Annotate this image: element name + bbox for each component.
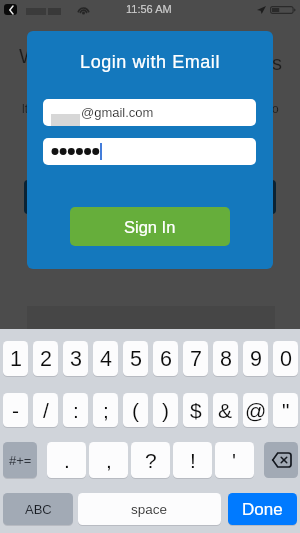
staticText: ? [145,449,157,472]
staticText: ( [132,399,139,422]
staticText: Login with Email [27,52,273,72]
button[interactable]: " [273,393,298,427]
button[interactable]: . [47,442,86,478]
button[interactable]: / [33,393,58,427]
button[interactable]: 5 [123,341,148,376]
staticText: ; [103,399,109,422]
button[interactable]: , [89,442,128,478]
button[interactable]: 1 [3,341,28,376]
staticText: & [218,399,233,422]
staticText: , [106,449,112,472]
staticText: 8 [220,347,232,371]
button[interactable]: @ [243,393,268,427]
staticText: Welcome to our Rewards [19,45,244,67]
staticText: o [272,102,279,115]
staticText: 6 [160,347,172,371]
staticText: 0 [280,347,292,371]
button[interactable]: & [213,393,238,427]
button[interactable]: ; [93,393,118,427]
button[interactable]: 9 [243,341,268,376]
button[interactable]: ) [153,393,178,427]
staticText: 5 [130,347,142,371]
staticText: @ [245,399,267,422]
button[interactable]: @gmail.com [43,99,256,126]
staticText: lt [22,102,28,115]
staticText: 2 [40,347,52,371]
button[interactable]: - [3,393,28,427]
button[interactable]: ( [123,393,148,427]
button[interactable]: Back [4,4,17,15]
button[interactable]: $ [183,393,208,427]
button[interactable]: Sign In [70,207,230,246]
staticText: 4 [100,347,112,371]
staticText: #+= [9,453,32,468]
button[interactable] [43,138,256,165]
button[interactable]: 4 [93,341,118,376]
staticText: 3 [70,347,82,371]
staticText: ' [232,449,237,472]
staticText: - [12,399,19,422]
staticText: space [131,502,168,517]
staticText: ! [190,449,196,472]
staticText: . [64,449,70,472]
staticText: $ [190,399,202,422]
staticText: 11:56 AM [126,3,172,15]
button[interactable]: 7 [183,341,208,376]
staticText: " [282,399,290,422]
button[interactable]: ! [173,442,212,478]
button[interactable]: #+= [3,442,37,478]
button[interactable]: 3 [63,341,88,376]
button[interactable]: ABC [3,493,73,525]
staticText: @gmail.com [81,105,154,120]
staticText: ABC [25,502,52,517]
button[interactable]: Backspace [264,442,298,478]
button[interactable]: 0 [273,341,298,376]
button[interactable]: ? [131,442,170,478]
button[interactable]: 2 [33,341,58,376]
staticText: : [73,399,79,422]
staticText: s [272,52,282,74]
button[interactable]: 6 [153,341,178,376]
button[interactable]: Done [228,493,297,525]
staticText: 9 [250,347,262,371]
button[interactable]: space [78,493,221,525]
button[interactable]: ' [215,442,254,478]
staticText: 1 [10,347,22,371]
button[interactable]: 8 [213,341,238,376]
staticText: Done [242,500,283,519]
staticText: Sign In [124,218,176,236]
staticText: / [43,399,49,422]
button[interactable]: : [63,393,88,427]
staticText: ) [162,399,169,422]
staticText: 7 [190,347,202,371]
